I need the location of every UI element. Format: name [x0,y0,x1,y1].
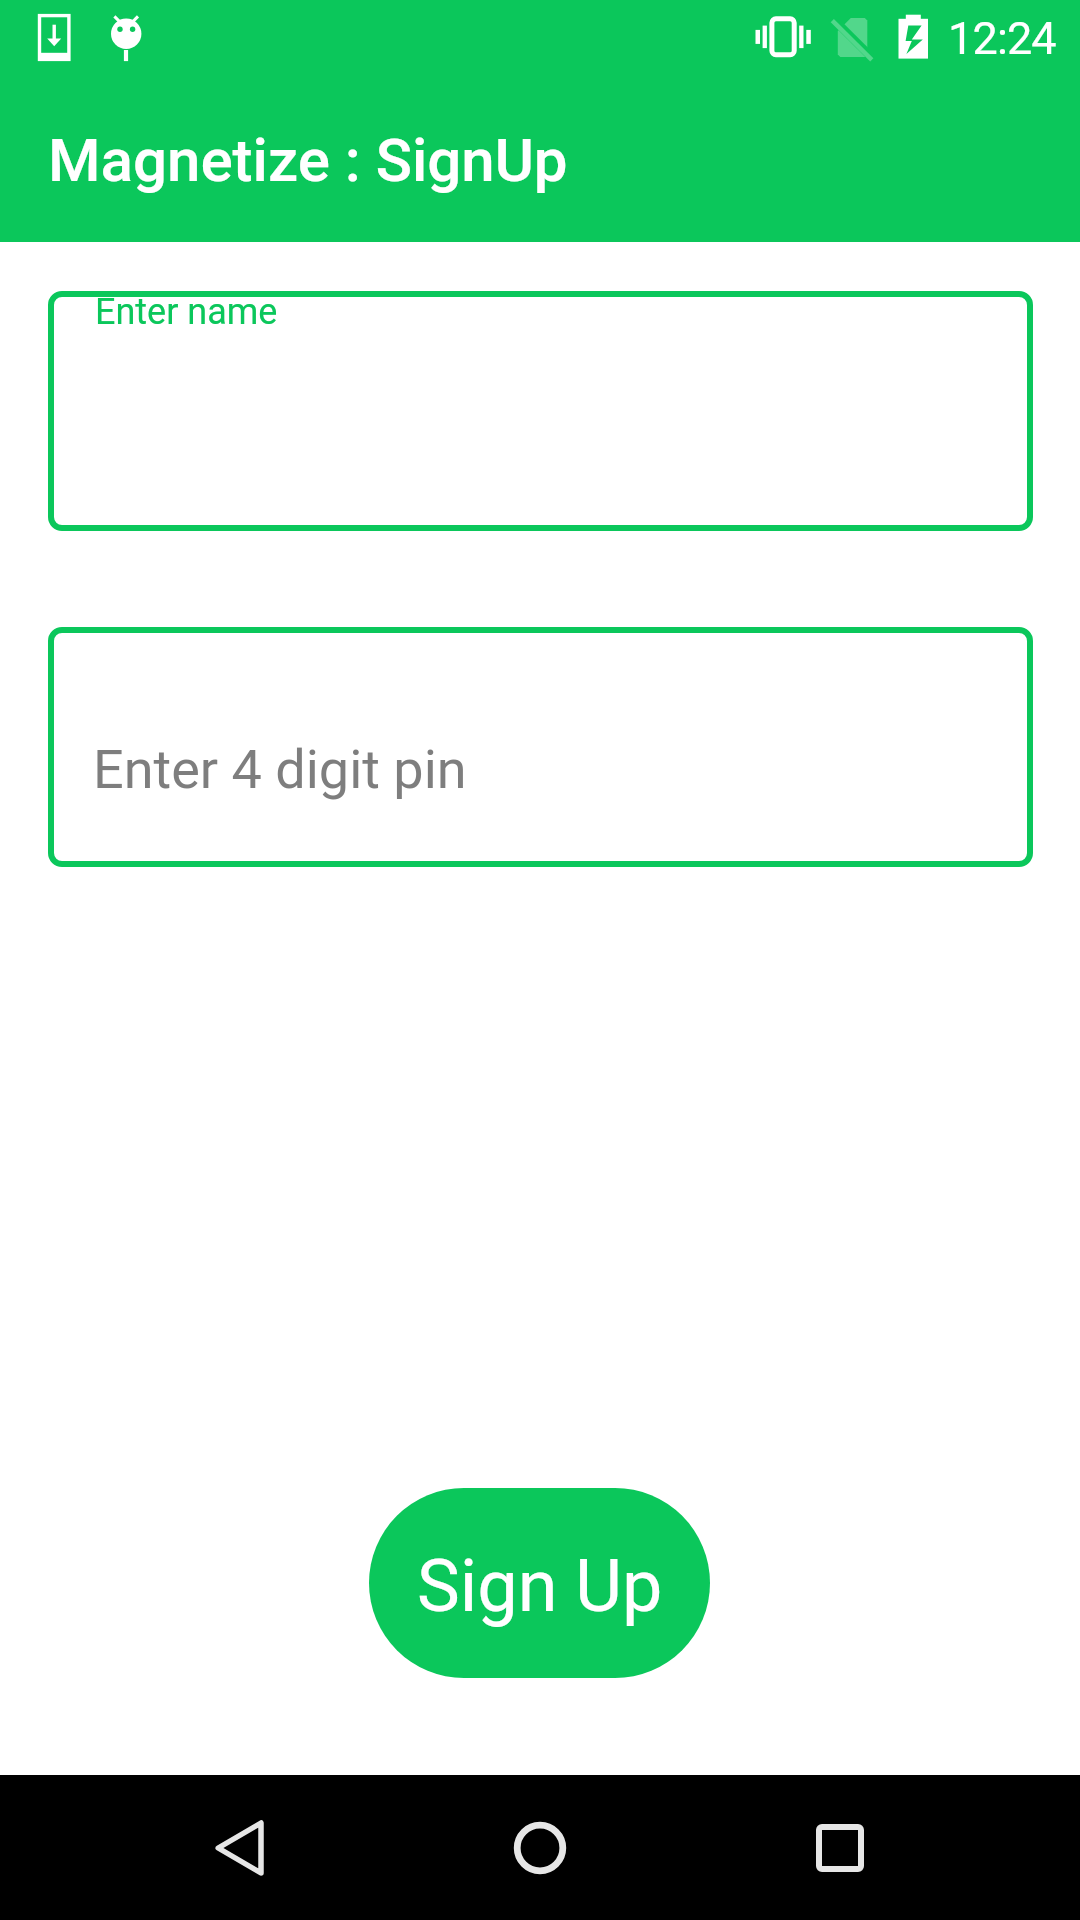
staticText: Sign Up [417,1544,663,1628]
button[interactable]: Enter name [48,291,1033,531]
button[interactable]: Sign Up [369,1488,710,1678]
staticText: Enter 4 digit pin [93,738,467,801]
staticText: Magnetize : SignUp [48,125,568,195]
staticText: 12:24 [948,12,1056,65]
staticText: Enter name [95,291,278,333]
button[interactable]: Recent apps [750,1775,930,1920]
button[interactable]: Back [150,1775,330,1920]
button[interactable]: Enter 4 digit pin [48,627,1033,867]
button[interactable]: Home [450,1775,630,1920]
